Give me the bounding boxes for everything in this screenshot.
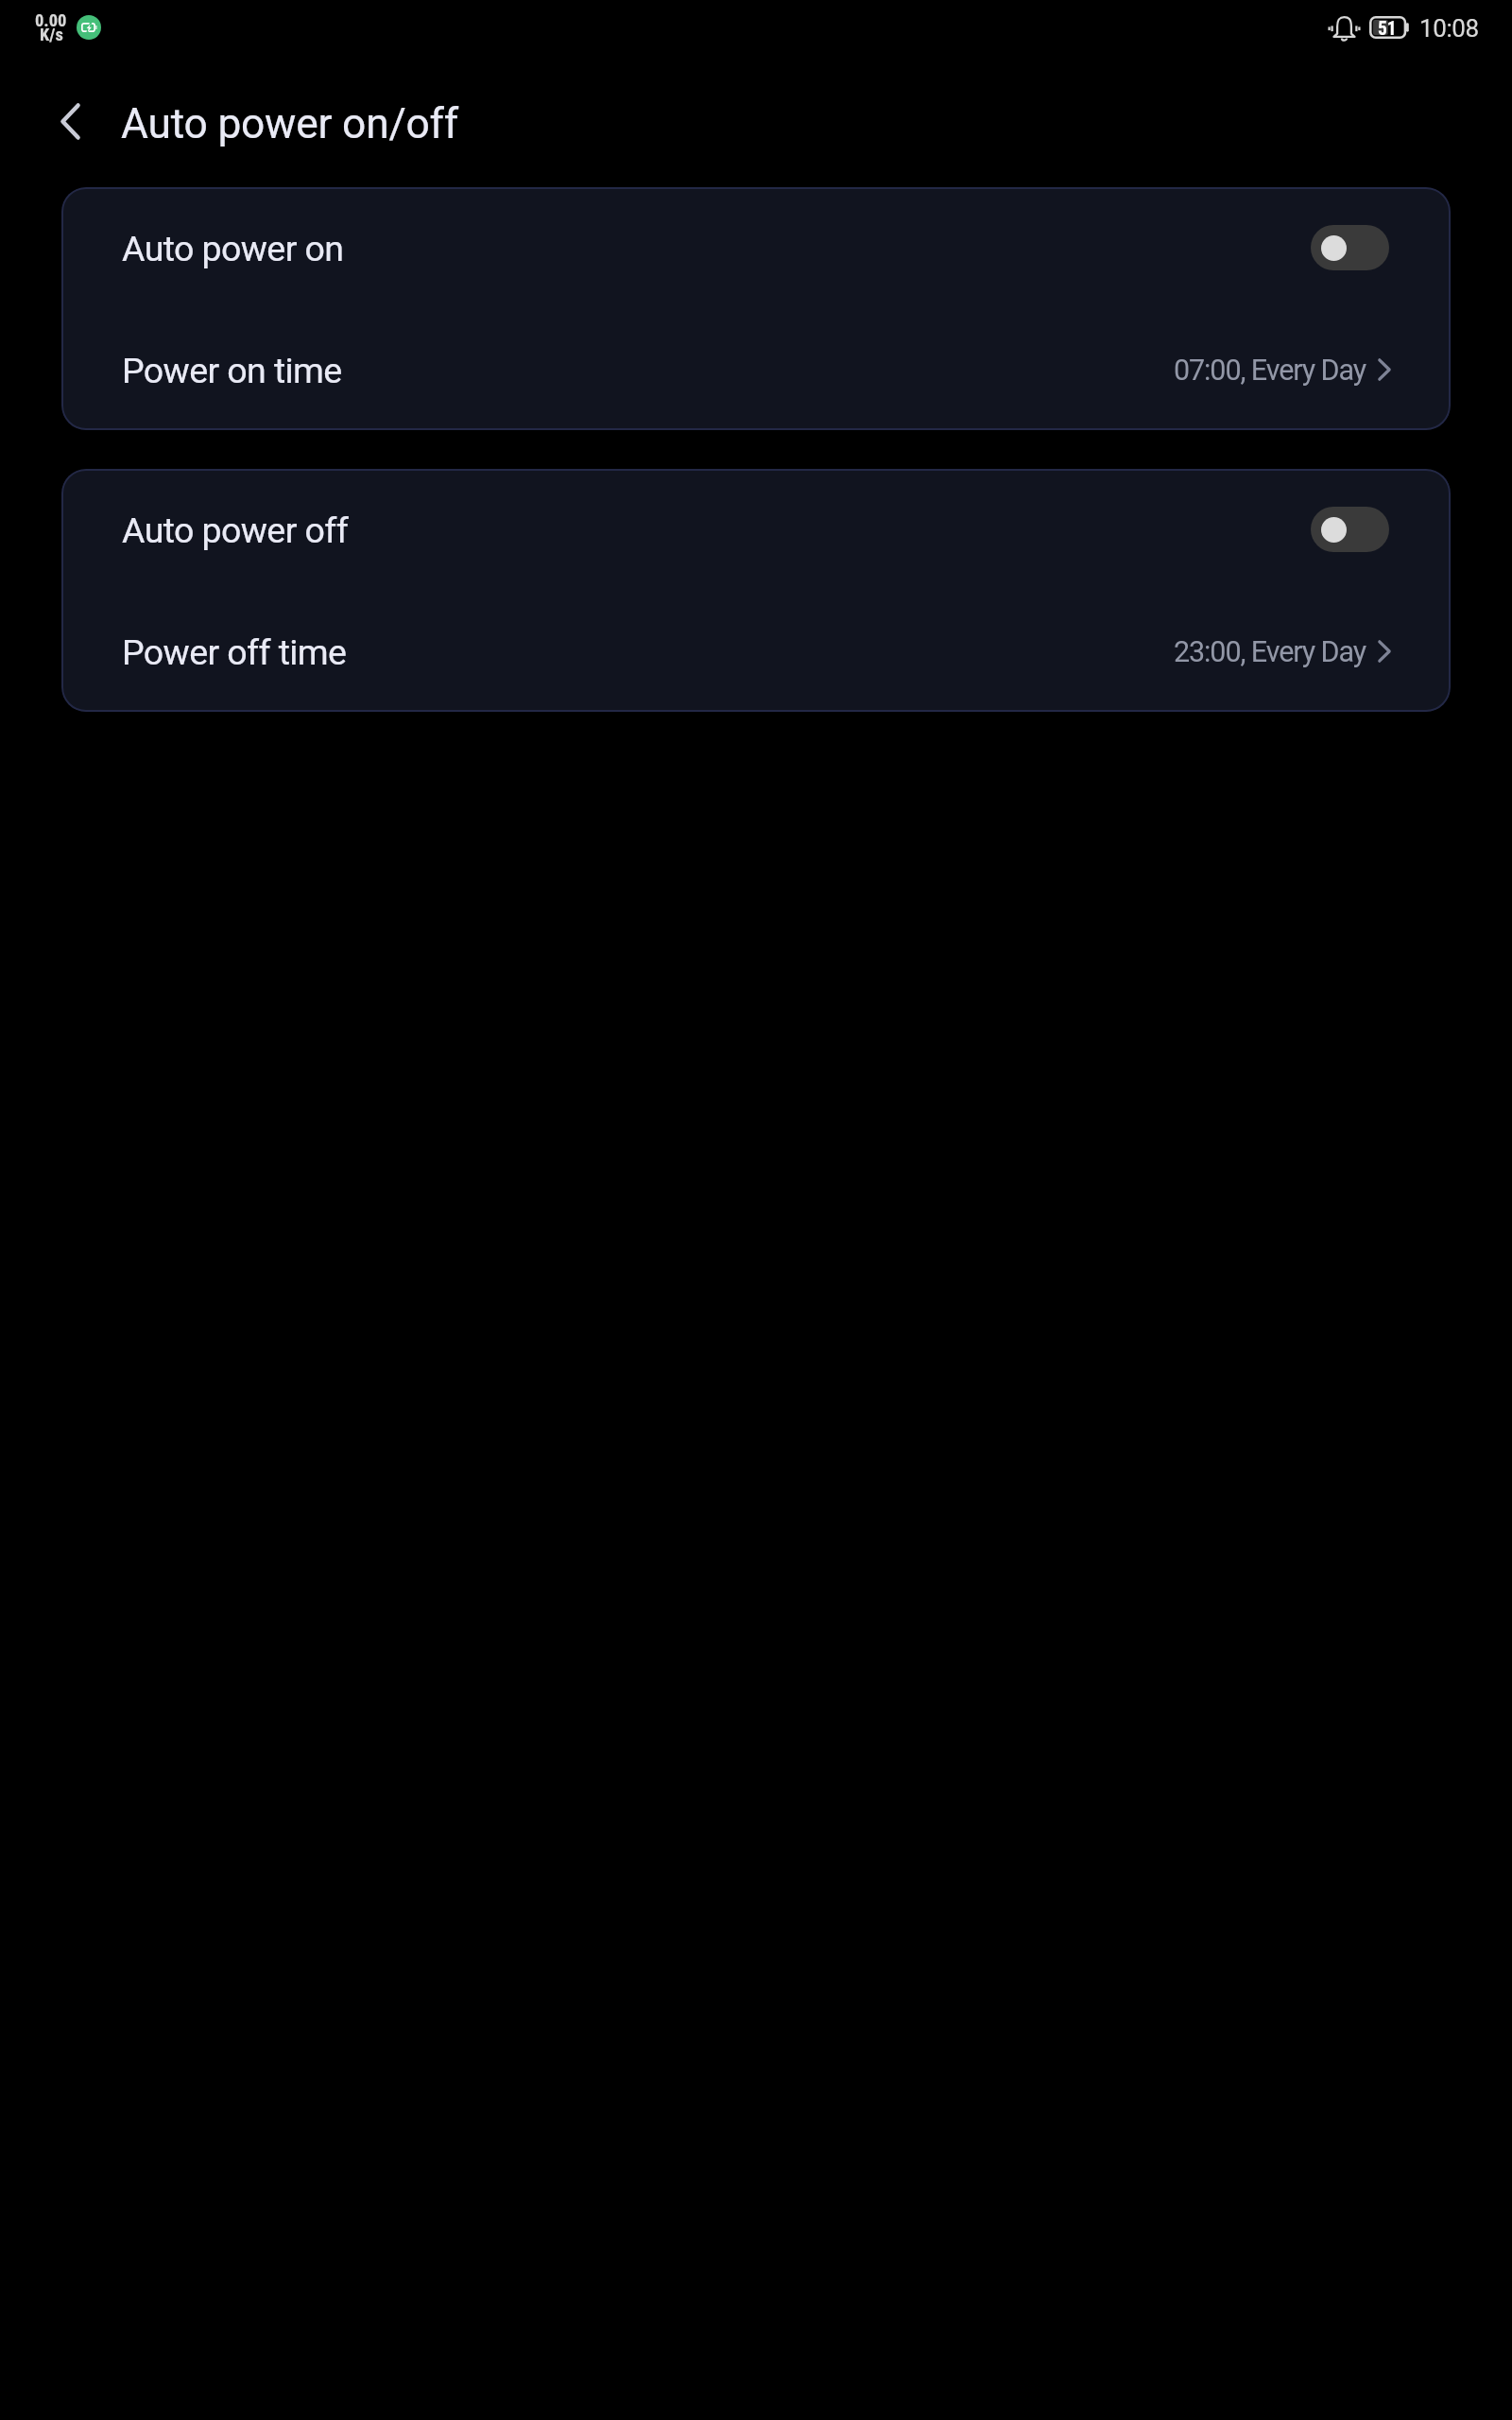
button[interactable]: Back [37,88,104,155]
staticText: 51 [1378,18,1397,40]
staticText: Power off time [122,631,347,673]
staticText: K/s [40,25,63,45]
button[interactable]: Toggle [1311,507,1389,552]
button[interactable]: Auto power off [61,469,1451,590]
staticText: Power on time [122,350,342,391]
button[interactable]: Power on time [61,308,1451,430]
staticText: Auto power off [122,510,349,551]
staticText: 0.00 [35,10,67,31]
button[interactable]: Toggle [1311,225,1389,270]
staticText: Auto power on [122,228,344,269]
staticText: 07:00, Every Day [1174,354,1366,388]
button[interactable]: Power off time [61,590,1451,712]
staticText: Auto power on/off [121,99,458,148]
staticText: 10:08 [1419,14,1479,43]
staticText: 23:00, Every Day [1174,635,1366,669]
button[interactable]: Auto power on [61,187,1451,308]
